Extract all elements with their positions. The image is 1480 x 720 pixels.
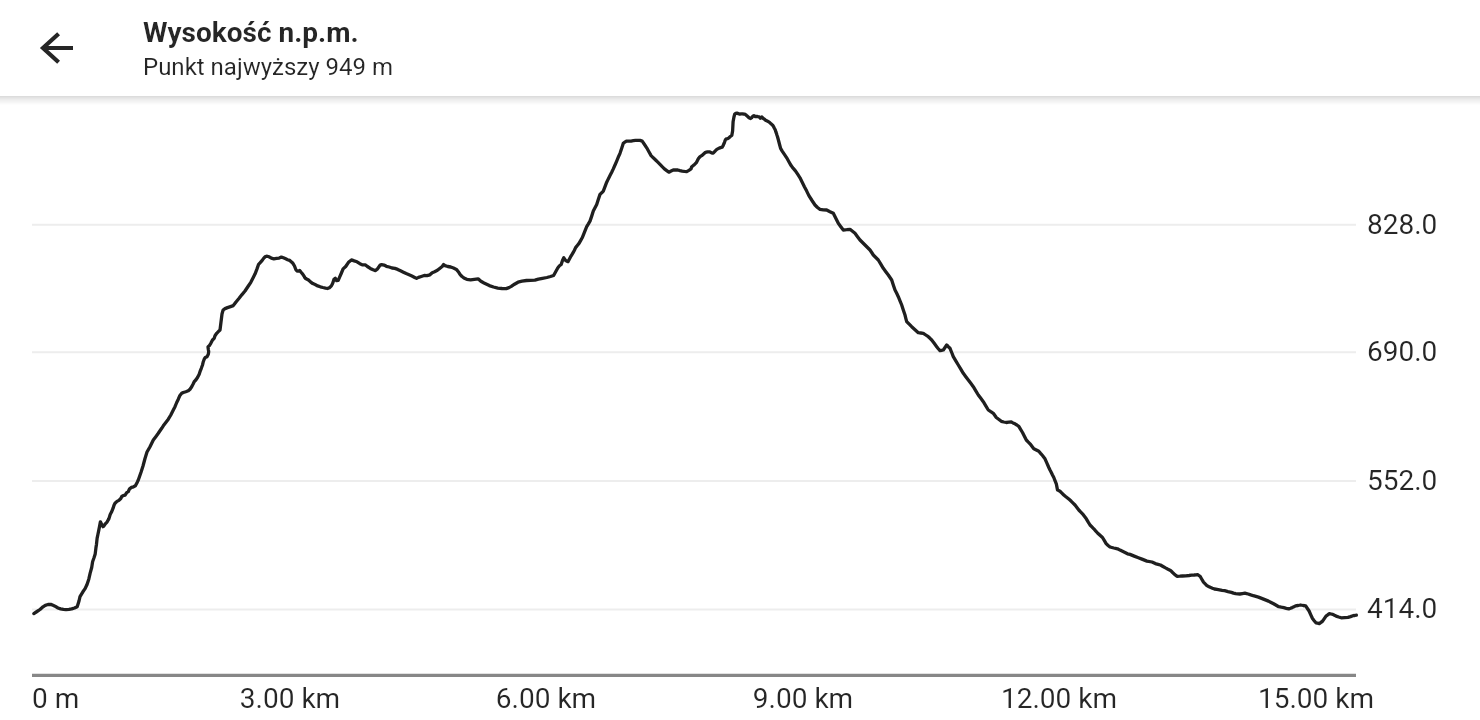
staticText: Punkt najwyższy 949 m <box>143 53 394 81</box>
staticText: 828.0 <box>1367 208 1438 241</box>
staticText: 12.00 km <box>969 682 1149 715</box>
button[interactable]: Wstecz <box>25 15 91 81</box>
staticText: 15.00 km <box>1226 682 1406 715</box>
staticText: 3.00 km <box>200 682 380 715</box>
staticText: Wysokość n.p.m. <box>143 16 359 49</box>
staticText: 690.0 <box>1367 335 1438 368</box>
staticText: 6.00 km <box>456 682 636 715</box>
staticText: 9.00 km <box>713 682 893 715</box>
staticText: 414.0 <box>1367 592 1438 625</box>
staticText: 552.0 <box>1367 464 1438 497</box>
staticText: 0 m <box>32 682 80 715</box>
